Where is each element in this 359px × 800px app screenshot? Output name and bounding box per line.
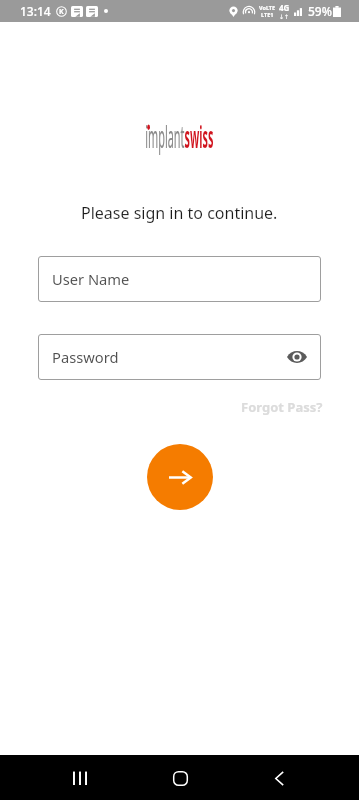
button[interactable]: Back bbox=[259, 758, 299, 798]
staticText: LTE1 bbox=[261, 11, 274, 18]
button[interactable]: Password bbox=[38, 334, 321, 380]
button[interactable]: Show password bbox=[283, 343, 311, 371]
button[interactable]: Forgot Pass? bbox=[241, 398, 323, 416]
staticText: 4G bbox=[279, 2, 290, 13]
staticText: implantswiss bbox=[145, 115, 214, 157]
button[interactable]: Recents bbox=[60, 758, 100, 798]
staticText: Password bbox=[52, 347, 119, 367]
button[interactable]: Sign in bbox=[147, 444, 213, 510]
staticText: ↓↑ bbox=[279, 13, 290, 20]
staticText: 13:14 bbox=[20, 3, 51, 19]
button[interactable]: Home bbox=[160, 758, 200, 798]
staticText: User Name bbox=[52, 269, 130, 289]
staticText: K bbox=[59, 7, 64, 17]
button[interactable]: User Name bbox=[38, 256, 321, 302]
staticText: Please sign in to continue. bbox=[81, 202, 278, 224]
staticText: VoLTE bbox=[259, 4, 276, 11]
staticText: 59% bbox=[308, 3, 332, 19]
